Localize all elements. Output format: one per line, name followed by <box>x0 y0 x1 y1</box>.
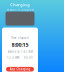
staticText: Time elapsed <box>11 36 29 40</box>
staticText: 12.4 kWh <box>7 56 20 59</box>
staticText: Started at 7:42 AM <box>7 50 32 53</box>
staticText: $4.80 <box>24 56 33 59</box>
button[interactable]: Stop Charging <box>6 67 34 71</box>
staticText: 8:00:15 <box>11 41 28 48</box>
staticText: Stop Charging <box>9 67 30 71</box>
staticText: Charging <box>10 2 30 7</box>
staticText: Session in progress <box>6 8 33 11</box>
